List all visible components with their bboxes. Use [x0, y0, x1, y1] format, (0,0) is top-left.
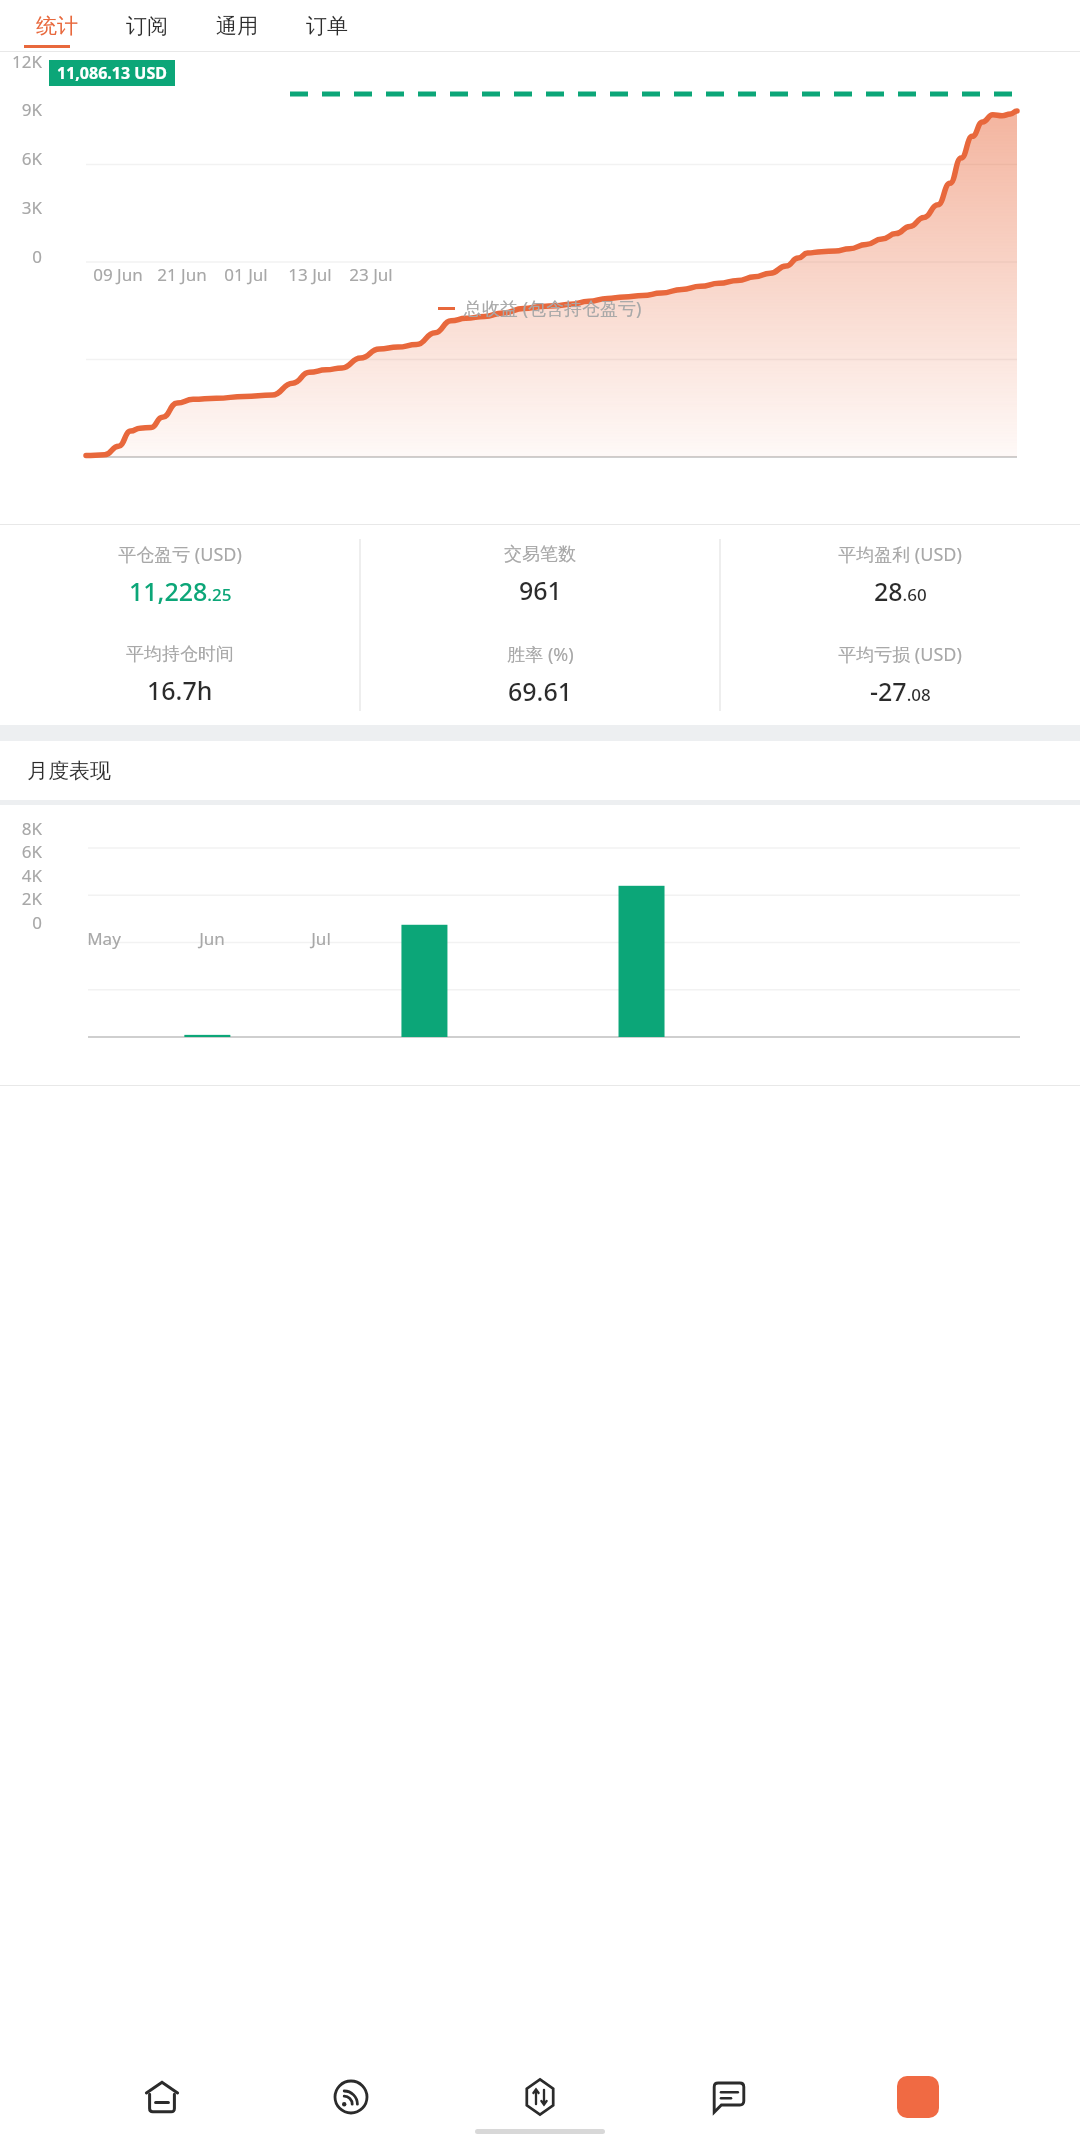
staticText: 通用: [216, 13, 258, 39]
button[interactable]: 平均盈利 (USD): [720, 525, 1080, 625]
staticText: 28.60: [874, 574, 927, 608]
button[interactable]: Home: [135, 2070, 189, 2124]
staticText: 69.61: [508, 674, 573, 708]
staticText: 0: [32, 911, 42, 934]
button[interactable]: 订单: [294, 0, 360, 52]
staticText: 交易笔数: [504, 543, 576, 566]
button[interactable]: Trade: [513, 2070, 567, 2124]
staticText: 01 Jul: [224, 263, 268, 286]
staticText: -27.08: [870, 674, 931, 708]
staticText: 3K: [21, 196, 42, 219]
staticText: 21 Jun: [157, 263, 207, 286]
staticText: 4K: [21, 864, 42, 887]
staticText: Jul: [311, 927, 331, 950]
button[interactable]: Messages: [702, 2070, 756, 2124]
staticText: 2K: [21, 887, 42, 910]
staticText: 11,086.13 USD: [57, 62, 167, 84]
staticText: 23 Jul: [349, 263, 393, 286]
button[interactable]: 平仓盈亏 (USD): [0, 525, 360, 625]
button[interactable]: Profile: [891, 2070, 945, 2124]
staticText: 8K: [21, 817, 42, 840]
button[interactable]: 统计: [24, 0, 90, 52]
staticText: 16.7h: [147, 673, 213, 707]
staticText: 月度表现: [27, 758, 111, 784]
button[interactable]: 平均亏损 (USD): [720, 625, 1080, 725]
button[interactable]: Signals: [324, 2070, 378, 2124]
button[interactable]: 通用: [204, 0, 270, 52]
staticText: May: [87, 927, 121, 950]
staticText: 09 Jun: [93, 263, 143, 286]
button[interactable]: 胜率 (%): [360, 625, 720, 725]
staticText: 11,228.25: [129, 574, 232, 608]
staticText: 统计: [36, 13, 78, 39]
staticText: 961: [519, 573, 562, 607]
staticText: 6K: [21, 840, 42, 863]
staticText: Jun: [199, 927, 225, 950]
staticText: 0: [32, 245, 42, 268]
staticText: 平均持仓时间: [126, 643, 234, 666]
staticText: 平仓盈亏 (USD): [118, 542, 242, 567]
staticText: 订单: [306, 13, 348, 39]
staticText: 总收益 (包含持仓盈亏): [464, 296, 642, 321]
staticText: 订阅: [126, 13, 168, 39]
button[interactable]: 交易笔数: [360, 525, 720, 625]
staticText: 平均盈利 (USD): [838, 542, 962, 567]
staticText: 9K: [21, 98, 42, 121]
staticText: 胜率 (%): [507, 642, 574, 667]
button[interactable]: 订阅: [114, 0, 180, 52]
staticText: 12K: [12, 50, 42, 73]
staticText: 6K: [21, 147, 42, 170]
button[interactable]: 平均持仓时间: [0, 625, 360, 725]
staticText: 平均亏损 (USD): [838, 642, 962, 667]
staticText: 13 Jul: [288, 263, 332, 286]
